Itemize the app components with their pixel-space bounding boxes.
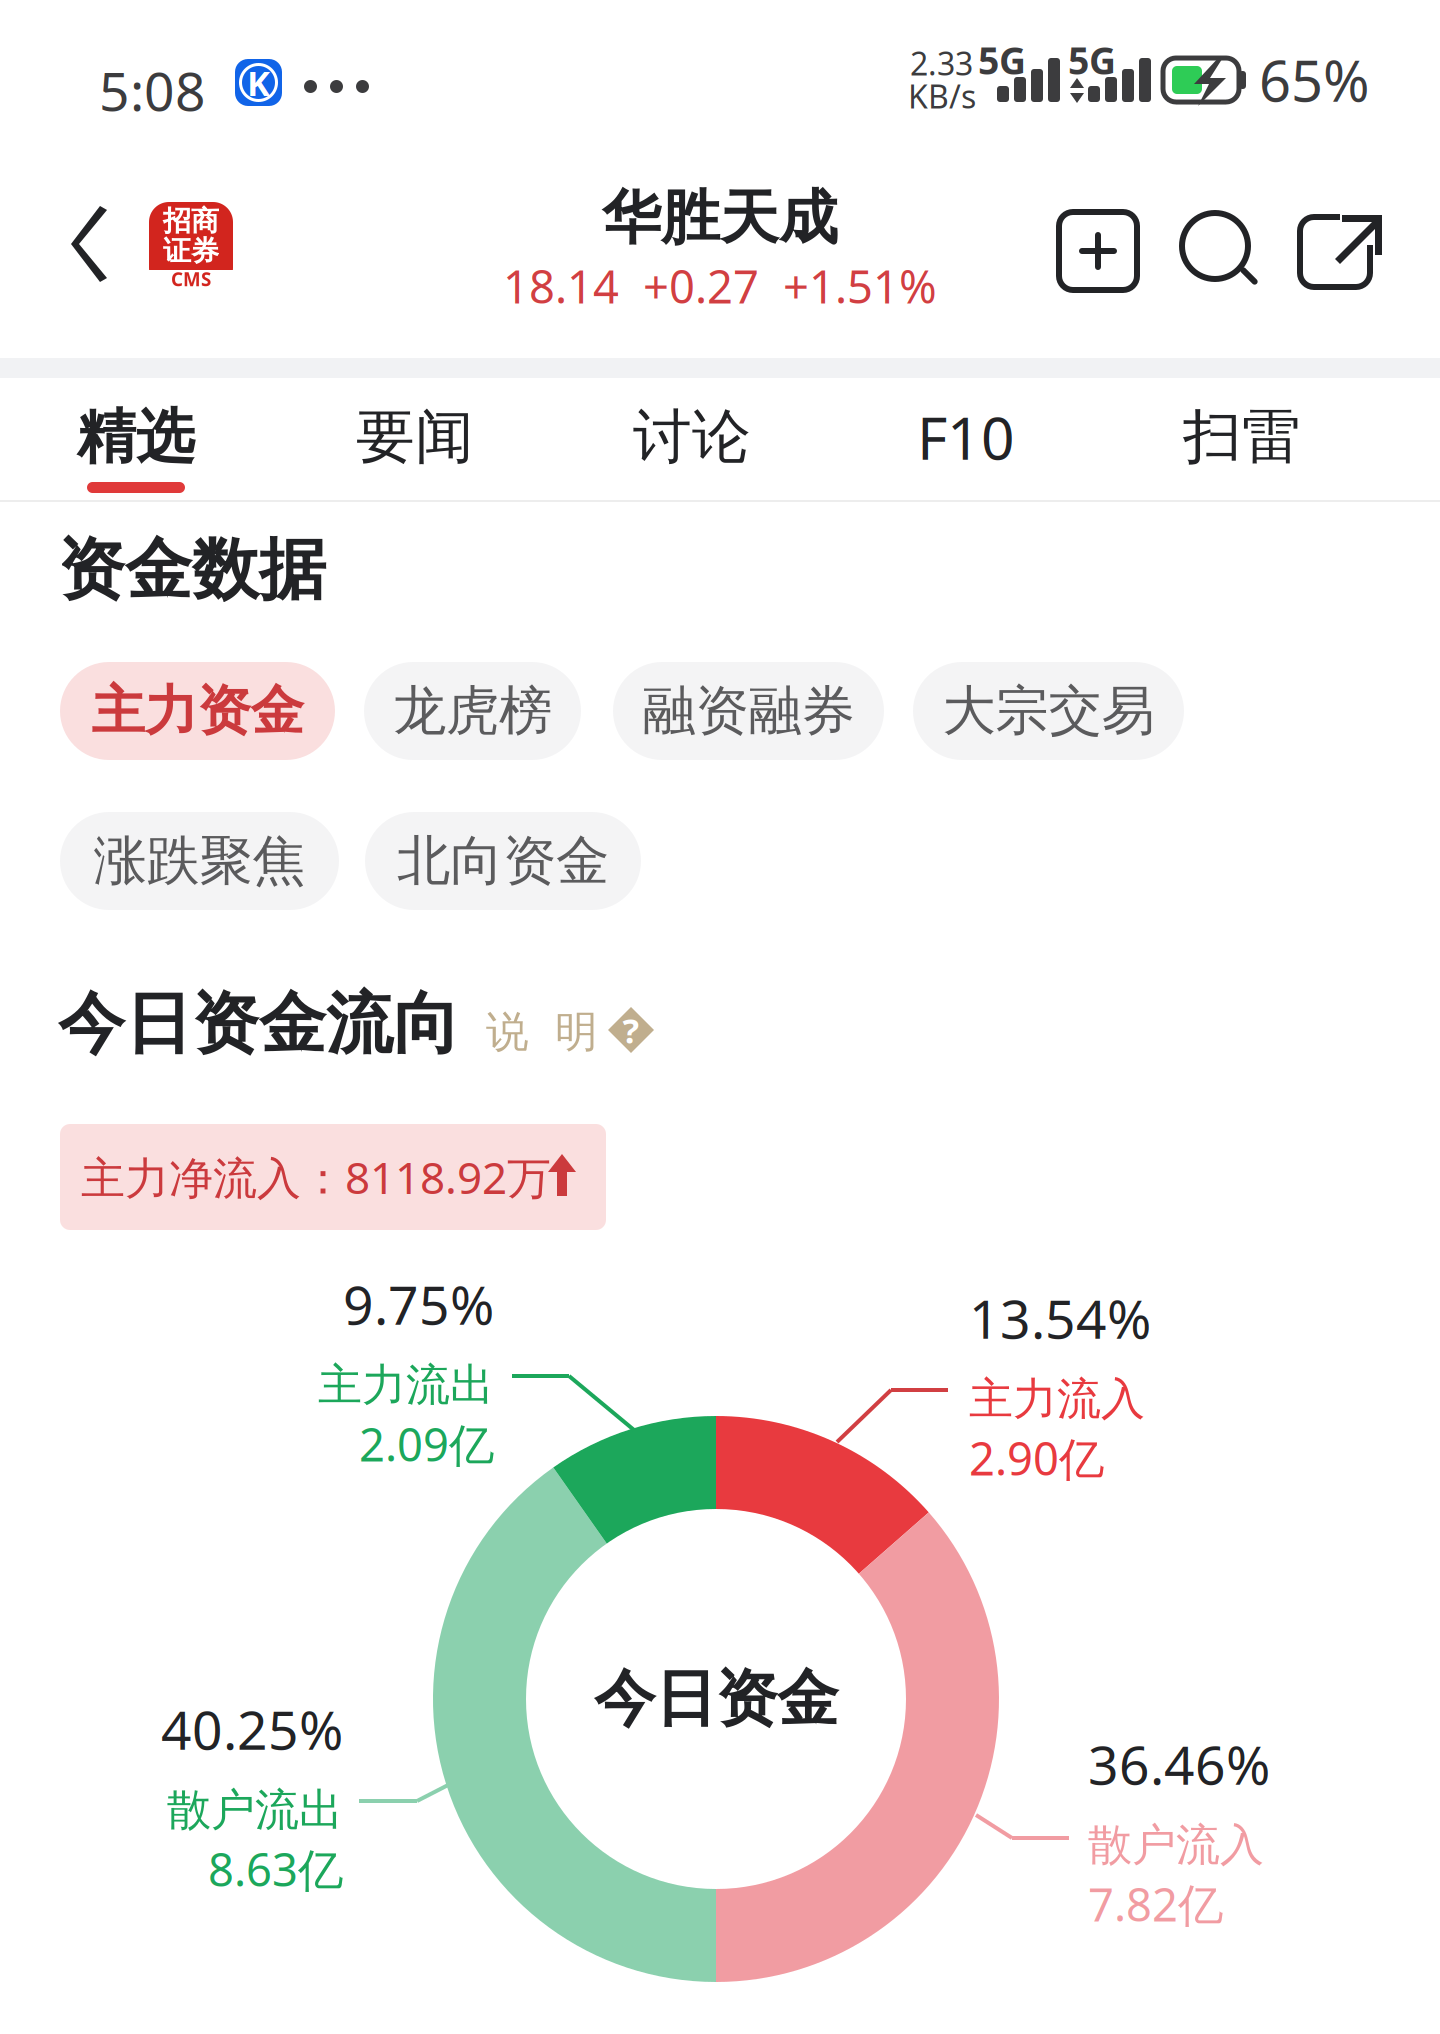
staticText: 扫雷: [1183, 401, 1301, 473]
staticText: K: [247, 59, 270, 105]
staticText: 今日资金: [594, 1661, 838, 1737]
staticText: 主力资金: [91, 678, 303, 744]
staticText: 65%: [1259, 43, 1370, 117]
button[interactable]: 主力资金: [60, 662, 335, 760]
button[interactable]: 龙虎榜: [364, 662, 581, 760]
staticText: 讨论: [633, 401, 751, 473]
button[interactable]: Add: [1053, 206, 1143, 296]
button[interactable]: 精选: [56, 402, 216, 507]
staticText: 说 明: [486, 1006, 598, 1058]
staticText: KB/s: [908, 75, 976, 117]
staticText: 散户流出: [167, 1783, 343, 1837]
staticText: 5G: [1068, 35, 1116, 85]
staticText: 7.82亿: [1088, 1874, 1223, 1934]
button[interactable]: Back: [46, 195, 136, 295]
staticText: 2.09亿: [359, 1414, 494, 1474]
staticText: 要闻: [356, 401, 474, 473]
staticText: CMS: [171, 267, 211, 291]
button[interactable]: Search: [1175, 206, 1265, 296]
button[interactable]: 扫雷: [1162, 402, 1322, 472]
button[interactable]: Share: [1297, 206, 1387, 296]
staticText: 招商: [163, 204, 219, 238]
staticText: 主力净流入：8118.92万: [81, 1148, 551, 1206]
staticText: 2.90亿: [969, 1428, 1104, 1488]
staticText: 主力流出: [318, 1358, 494, 1412]
button[interactable]: F10: [886, 402, 1046, 472]
button[interactable]: 涨跌聚焦: [60, 812, 339, 910]
staticText: 40.25%: [161, 1694, 343, 1764]
staticText: 今日资金流向: [58, 983, 460, 1065]
staticText: F10: [917, 398, 1015, 476]
staticText: 5:08: [99, 55, 206, 126]
staticText: 证券: [163, 234, 219, 268]
staticText: 36.46%: [1088, 1729, 1270, 1799]
staticText: 2.33: [910, 42, 973, 84]
button[interactable]: 要闻: [335, 402, 495, 472]
button[interactable]: 北向资金: [365, 812, 641, 910]
staticText: 13.54%: [969, 1283, 1151, 1353]
staticText: 9.75%: [343, 1269, 494, 1339]
staticText: 18.14 +0.27 +1.51%: [503, 256, 937, 316]
staticText: 融资融券: [642, 678, 854, 744]
button[interactable]: 讨论: [612, 402, 772, 472]
staticText: 华胜天成: [602, 182, 838, 254]
staticText: ?: [622, 1007, 639, 1053]
staticText: 精选: [77, 401, 195, 473]
staticText: 5G: [978, 35, 1026, 85]
staticText: 北向资金: [397, 828, 609, 894]
staticText: 涨跌聚焦: [93, 828, 305, 894]
staticText: 资金数据: [58, 529, 326, 611]
button[interactable]: 融资融券: [613, 662, 884, 760]
button[interactable]: 大宗交易: [913, 662, 1184, 760]
staticText: 主力流入: [969, 1372, 1145, 1426]
staticText: 散户流入: [1088, 1818, 1264, 1872]
staticText: 8.63亿: [208, 1839, 343, 1899]
staticText: 龙虎榜: [393, 678, 552, 744]
staticText: 大宗交易: [942, 678, 1154, 744]
